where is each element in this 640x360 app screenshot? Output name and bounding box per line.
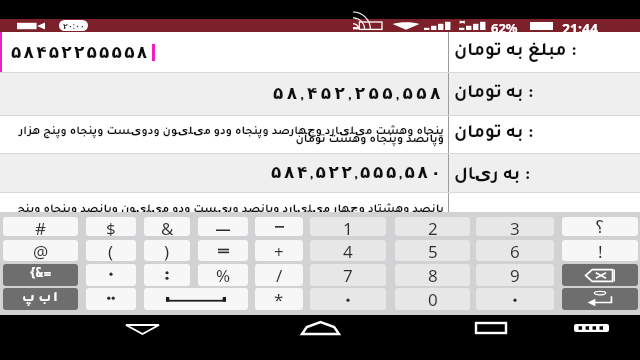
button[interactable] xyxy=(310,288,386,310)
button[interactable]: * xyxy=(255,288,303,310)
staticText: ۲۰:۰۰ xyxy=(63,20,85,31)
button[interactable]: ۵۸۴۵۲۲۵۵۵۵۸ xyxy=(0,32,448,72)
staticText: ۵۸۴,۵۲۲,۵۵۵,۵۸۰ xyxy=(271,162,444,184)
button[interactable]: ) xyxy=(144,240,190,261)
button[interactable]: + xyxy=(255,240,303,261)
button[interactable]: 0 xyxy=(395,288,470,310)
staticText: + xyxy=(274,240,284,261)
staticText: 21:44 xyxy=(562,19,598,32)
staticText: 8 xyxy=(428,264,438,286)
button[interactable]: به تومان : xyxy=(454,116,640,153)
button[interactable]: ؟ xyxy=(562,217,638,236)
staticText: ؟ xyxy=(595,217,605,236)
staticText: پنجاه وهشت میلیارد وچهارصد وپنجاه ودو می… xyxy=(3,123,444,146)
staticText: 2 xyxy=(428,217,438,236)
staticText: 4 xyxy=(343,240,353,261)
staticText: به تومان : xyxy=(454,125,534,144)
button[interactable]: Symbols xyxy=(3,264,78,286)
button[interactable]: 3 xyxy=(476,217,554,236)
button[interactable]: Back xyxy=(124,321,160,337)
staticText: @ xyxy=(33,240,49,261)
button[interactable]: Recent apps xyxy=(474,322,507,334)
button[interactable]: Backspace xyxy=(562,264,638,286)
staticText: 1 xyxy=(343,217,353,236)
staticText: ! xyxy=(598,240,603,261)
staticText: $ xyxy=(106,217,116,236)
button[interactable] xyxy=(198,217,248,236)
button[interactable]: 9 xyxy=(476,264,554,286)
staticText: 6 xyxy=(510,240,520,261)
staticText: 62% xyxy=(491,19,518,32)
staticText: به ریال : xyxy=(454,161,531,185)
staticText: % xyxy=(216,264,231,286)
staticText: 7 xyxy=(343,264,353,286)
button[interactable]: 1 xyxy=(310,217,386,236)
button[interactable]: ! xyxy=(562,240,638,261)
staticText: * xyxy=(274,288,284,310)
button[interactable]: به تومان : xyxy=(454,73,640,115)
button[interactable] xyxy=(476,288,554,310)
button[interactable]: Hide keyboard xyxy=(573,323,610,333)
button[interactable]: مبلغ به تومان : xyxy=(454,32,640,72)
button[interactable]: 5 xyxy=(395,240,470,261)
button[interactable]: به ریال : xyxy=(454,154,640,192)
staticText: 0 xyxy=(428,288,438,310)
button[interactable]: $ xyxy=(86,217,136,236)
staticText: / xyxy=(276,264,283,286)
button[interactable]: # xyxy=(3,217,78,236)
button[interactable] xyxy=(86,264,136,286)
staticText: ) xyxy=(164,240,170,261)
button[interactable] xyxy=(198,240,248,261)
staticText: ۵۸,۴۵۲,۲۵۵,۵۵۸ xyxy=(273,83,444,105)
button[interactable] xyxy=(144,264,190,286)
button[interactable]: Letters xyxy=(3,288,78,310)
staticText: پانصد وهشتاد وچهار میلیارد وپانصد وبیست … xyxy=(3,201,444,212)
staticText: 3 xyxy=(510,217,520,236)
staticText: 9 xyxy=(510,264,520,286)
button[interactable] xyxy=(86,288,136,310)
button[interactable]: @ xyxy=(3,240,78,261)
staticText: ۵۸۴۵۲۲۵۵۵۵۸ xyxy=(11,42,150,62)
button[interactable]: 8 xyxy=(395,264,470,286)
button[interactable]: 2 xyxy=(395,217,470,236)
staticText: & xyxy=(161,217,174,236)
button[interactable]: Home xyxy=(300,320,340,336)
staticText: {&= xyxy=(30,268,52,282)
button[interactable]: 6 xyxy=(476,240,554,261)
button[interactable]: Enter xyxy=(562,288,638,310)
button[interactable]: 7 xyxy=(310,264,386,286)
button[interactable]: 4 xyxy=(310,240,386,261)
staticText: به تومان : xyxy=(454,85,534,104)
staticText: اب‌پ xyxy=(22,292,60,306)
staticText: مبلغ به تومان : xyxy=(454,43,577,62)
button[interactable]: ( xyxy=(86,240,136,261)
button[interactable] xyxy=(255,217,303,236)
staticText: # xyxy=(35,217,46,236)
staticText: ( xyxy=(108,240,114,261)
button[interactable]: & xyxy=(144,217,190,236)
staticText: 5 xyxy=(428,240,438,261)
button[interactable]: % xyxy=(198,264,248,286)
button[interactable]: / xyxy=(255,264,303,286)
button[interactable]: Space xyxy=(144,288,248,310)
